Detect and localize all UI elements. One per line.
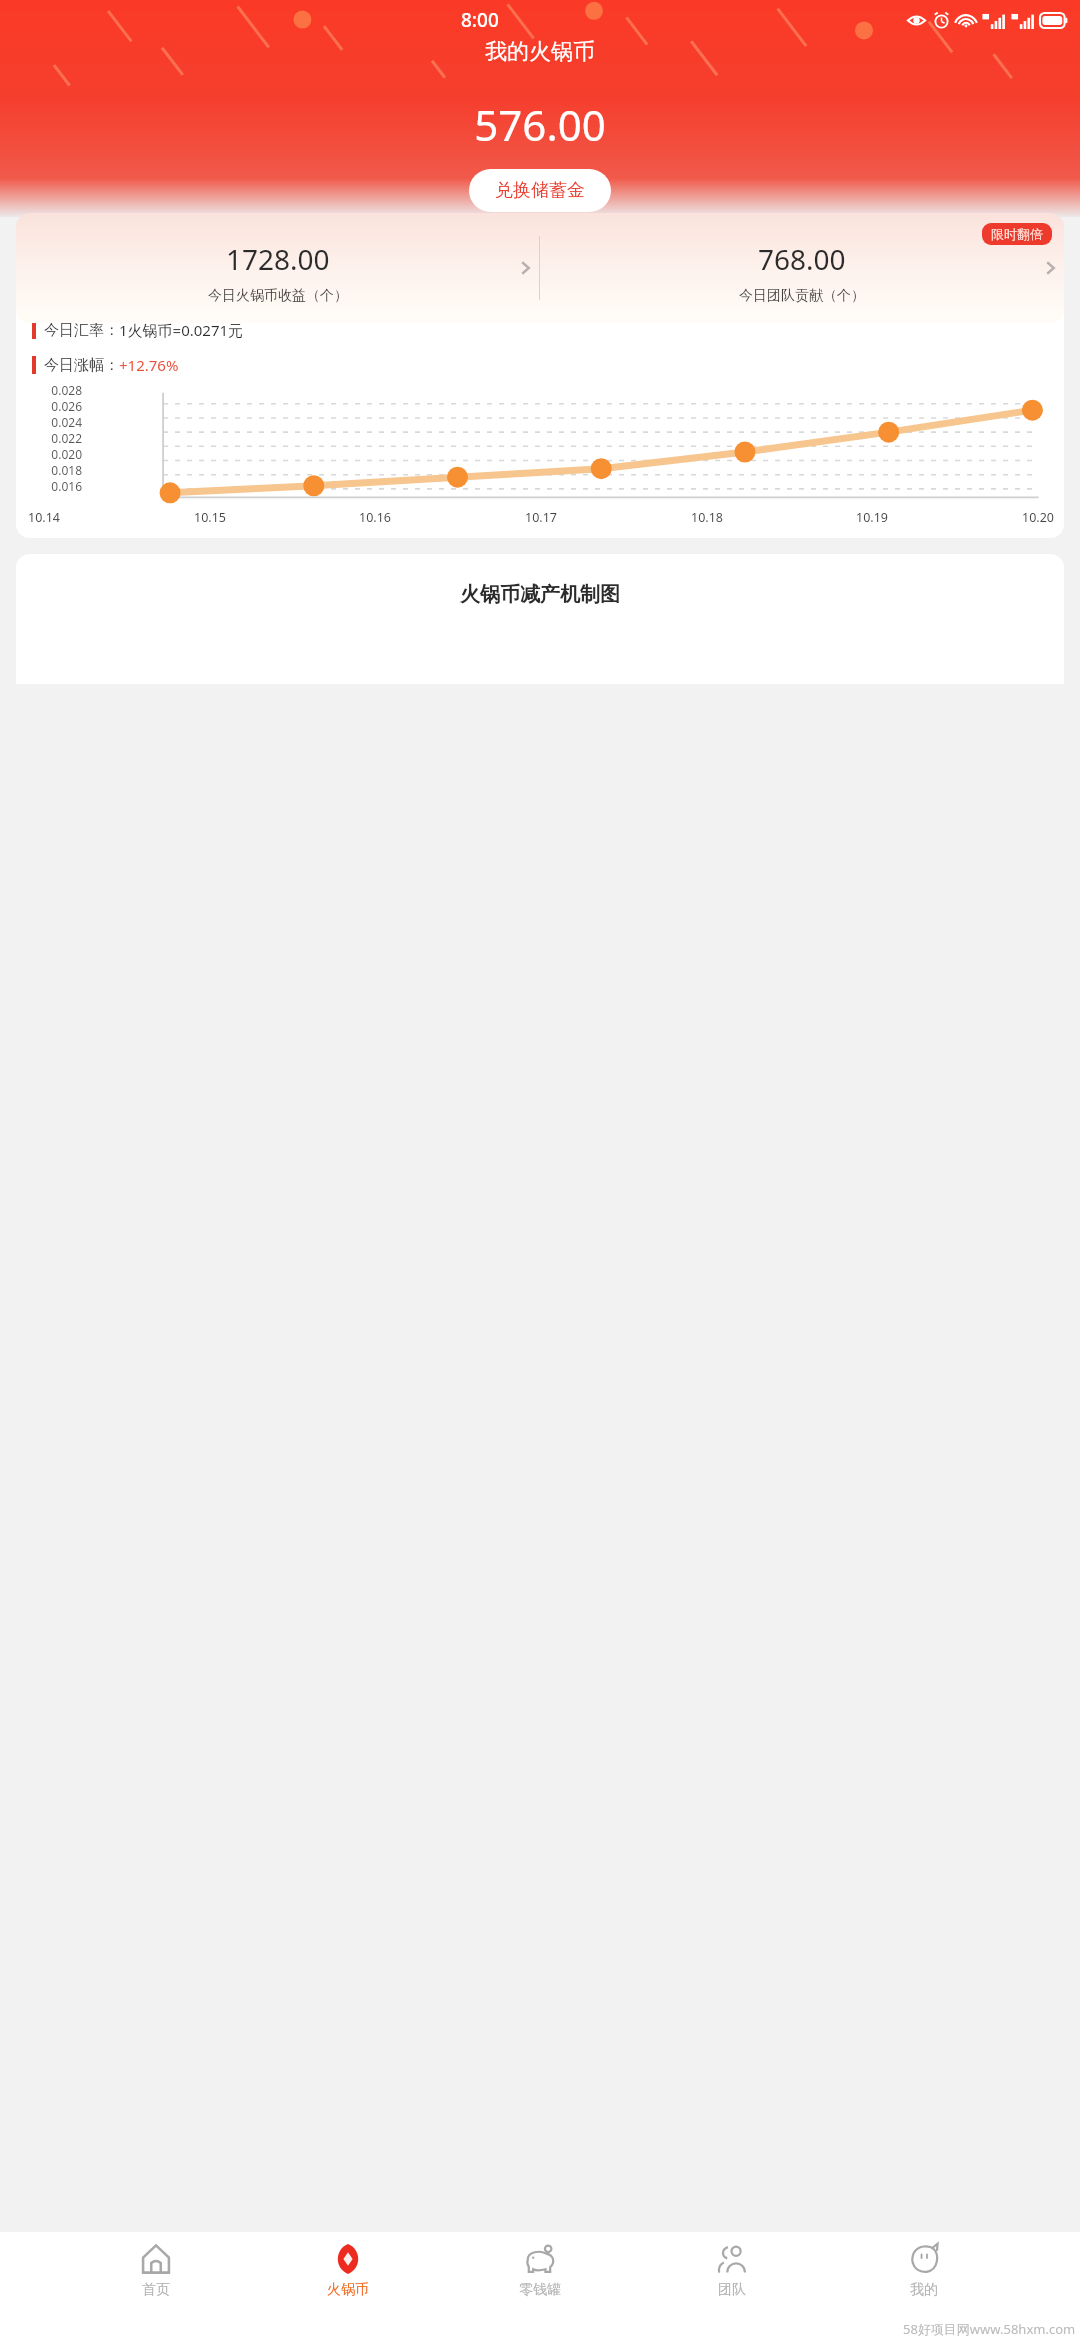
- staticText: 我的: [910, 2281, 938, 2299]
- staticText: 火锅币价格随着平台用户量、广告收入等核心商业数据每日波动: [28, 282, 1052, 298]
- staticText: 0.020: [24, 446, 82, 462]
- staticText: 10.14: [28, 509, 60, 526]
- staticText: 768.00: [758, 240, 846, 278]
- button[interactable]: 兑换储蓄金: [469, 169, 611, 212]
- staticText: 10.15: [194, 509, 226, 526]
- staticText: 我的火锅币: [0, 38, 1080, 66]
- button[interactable]: 1728.00: [16, 213, 539, 323]
- staticText: 今日火锅币收益（个）: [208, 287, 348, 305]
- staticText: 0.024: [24, 414, 82, 430]
- staticText: 10.18: [691, 509, 723, 526]
- button[interactable]: 首页: [120, 2242, 192, 2299]
- button[interactable]: 限时翻倍: [982, 223, 1052, 245]
- staticText: 8:00: [461, 7, 499, 33]
- staticText: 兑换储蓄金: [495, 179, 585, 202]
- staticText: 零钱罐: [519, 2281, 561, 2299]
- staticText: 58好项目网www.58hxm.com: [903, 2320, 1076, 2338]
- staticText: 火锅币: [327, 2281, 369, 2299]
- staticText: 今日汇率：: [44, 321, 119, 340]
- staticText: 今日团队贡献（个）: [739, 287, 865, 305]
- staticText: +12.76%: [119, 355, 179, 375]
- staticText: 1火锅币=0.0271元: [119, 320, 244, 340]
- staticText: 0.022: [24, 430, 82, 446]
- staticText: 10.20: [1022, 509, 1054, 526]
- button[interactable]: 零钱罐: [504, 2242, 576, 2299]
- staticText: 0.028: [24, 382, 82, 398]
- staticText: 0.018: [24, 462, 82, 478]
- staticText: 0.026: [24, 398, 82, 414]
- staticText: 火锅币减产机制图: [460, 582, 620, 607]
- staticText: 576.00: [0, 96, 1080, 153]
- staticText: 1728.00: [226, 240, 330, 278]
- staticText: 首页: [142, 2281, 170, 2299]
- button[interactable]: 768.00: [540, 213, 1064, 323]
- staticText: 10.16: [359, 509, 391, 526]
- staticText: 限时翻倍: [991, 226, 1043, 242]
- staticText: 0.016: [24, 478, 82, 491]
- staticText: 今日涨幅：: [44, 356, 119, 375]
- staticText: 10.17: [525, 509, 557, 526]
- button[interactable]: 团队: [696, 2242, 768, 2299]
- staticText: 每日火锅币价格走势图: [16, 243, 1064, 268]
- button[interactable]: 火锅币: [312, 2242, 384, 2299]
- staticText: 团队: [718, 2281, 746, 2299]
- button[interactable]: 我的: [888, 2242, 960, 2299]
- staticText: 10.19: [856, 509, 888, 526]
